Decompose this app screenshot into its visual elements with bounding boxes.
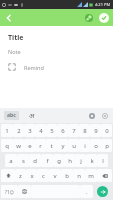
staticText: k — [90, 157, 94, 165]
staticText: b — [65, 172, 69, 180]
staticText: Remind — [24, 64, 44, 71]
button[interactable]: 0 — [101, 124, 112, 137]
staticText: 6 — [61, 127, 65, 135]
button[interactable]: Change language — [18, 185, 31, 198]
button[interactable]: o — [90, 139, 101, 152]
button[interactable]: Back — [0, 9, 17, 26]
button[interactable]: 7 — [68, 124, 79, 137]
staticText: अ — [29, 111, 35, 121]
button[interactable]: Enter — [97, 186, 108, 197]
staticText: z — [19, 172, 22, 180]
button[interactable]: 4 — [35, 124, 46, 137]
button[interactable]: 2 — [13, 124, 24, 137]
button[interactable]: e — [24, 139, 35, 152]
button[interactable]: 3 — [24, 124, 35, 137]
button[interactable]: d — [29, 154, 41, 167]
button[interactable]: Backspace — [97, 169, 112, 182]
button[interactable]: f — [41, 154, 53, 167]
button[interactable]: ?1☺ — [1, 185, 18, 198]
button[interactable]: abc — [4, 111, 19, 120]
button[interactable]: g — [53, 154, 64, 167]
staticText: r — [39, 142, 42, 150]
button[interactable]: k — [86, 154, 97, 167]
staticText: f — [46, 157, 49, 165]
staticText: n — [77, 172, 81, 180]
staticText: m — [88, 172, 94, 180]
staticText: 0 — [105, 127, 109, 135]
staticText: 3 — [28, 127, 32, 135]
staticText: abc — [7, 112, 16, 119]
button[interactable]: x — [26, 169, 37, 182]
staticText: u — [72, 142, 76, 150]
button[interactable]: p — [101, 139, 112, 152]
button[interactable]: Remind — [8, 63, 44, 71]
staticText: 2 — [17, 127, 21, 135]
button[interactable]: Title — [8, 33, 24, 43]
staticText: 5 — [50, 127, 54, 135]
staticText: d — [33, 157, 37, 165]
staticText: a — [9, 157, 13, 165]
staticText: 4:21 PM — [95, 2, 111, 7]
staticText: g — [57, 157, 61, 165]
button[interactable]: n — [73, 169, 85, 182]
staticText: 4 — [39, 127, 43, 135]
button[interactable]: l — [97, 154, 108, 167]
button[interactable]: q — [1, 139, 13, 152]
staticText: . — [86, 188, 88, 196]
staticText: y — [61, 142, 65, 150]
button[interactable]: h — [64, 154, 75, 167]
button[interactable]: Colour — [82, 11, 95, 24]
button[interactable]: 5 — [46, 124, 57, 137]
staticText: p — [105, 142, 109, 150]
button[interactable]: 9 — [90, 124, 101, 137]
button[interactable]: u — [68, 139, 79, 152]
staticText: v — [53, 172, 57, 180]
staticText: e — [28, 142, 32, 150]
button[interactable]: Settings — [87, 111, 96, 120]
button[interactable]: b — [61, 169, 73, 182]
button[interactable]: z — [15, 169, 26, 182]
staticText: q — [5, 142, 9, 150]
staticText: c — [42, 172, 45, 180]
button[interactable]: w — [13, 139, 24, 152]
button[interactable]: 8 — [79, 124, 90, 137]
staticText: 8 — [83, 127, 87, 135]
staticText: 7 — [72, 127, 76, 135]
button[interactable]: 6 — [57, 124, 68, 137]
staticText: s — [22, 157, 25, 165]
button[interactable]: a — [5, 154, 17, 167]
button[interactable]: Save — [97, 11, 110, 24]
staticText: l — [102, 157, 104, 165]
staticText: j — [80, 157, 82, 165]
button[interactable]: Emoji — [100, 111, 109, 120]
button[interactable]: y — [57, 139, 68, 152]
button[interactable]: अ — [29, 111, 35, 121]
button[interactable]: 1 — [1, 124, 13, 137]
staticText: t — [50, 142, 53, 150]
staticText: ?1☺ — [5, 189, 15, 195]
staticText: h — [68, 157, 72, 165]
staticText: w — [16, 142, 21, 150]
staticText: x — [30, 172, 34, 180]
button[interactable]: t — [46, 139, 57, 152]
button[interactable]: v — [49, 169, 61, 182]
staticText: 1 — [5, 127, 9, 135]
staticText: 9 — [94, 127, 98, 135]
button[interactable]: s — [17, 154, 29, 167]
button[interactable]: r — [35, 139, 46, 152]
button[interactable]: i — [79, 139, 90, 152]
staticText: o — [94, 142, 98, 150]
staticText: i — [84, 142, 86, 150]
button[interactable]: Shift — [1, 169, 15, 182]
button[interactable]: j — [75, 154, 86, 167]
button[interactable]: Note — [8, 48, 21, 55]
button[interactable]: . — [80, 185, 93, 198]
button[interactable]: m — [85, 169, 97, 182]
button[interactable]: c — [37, 169, 49, 182]
